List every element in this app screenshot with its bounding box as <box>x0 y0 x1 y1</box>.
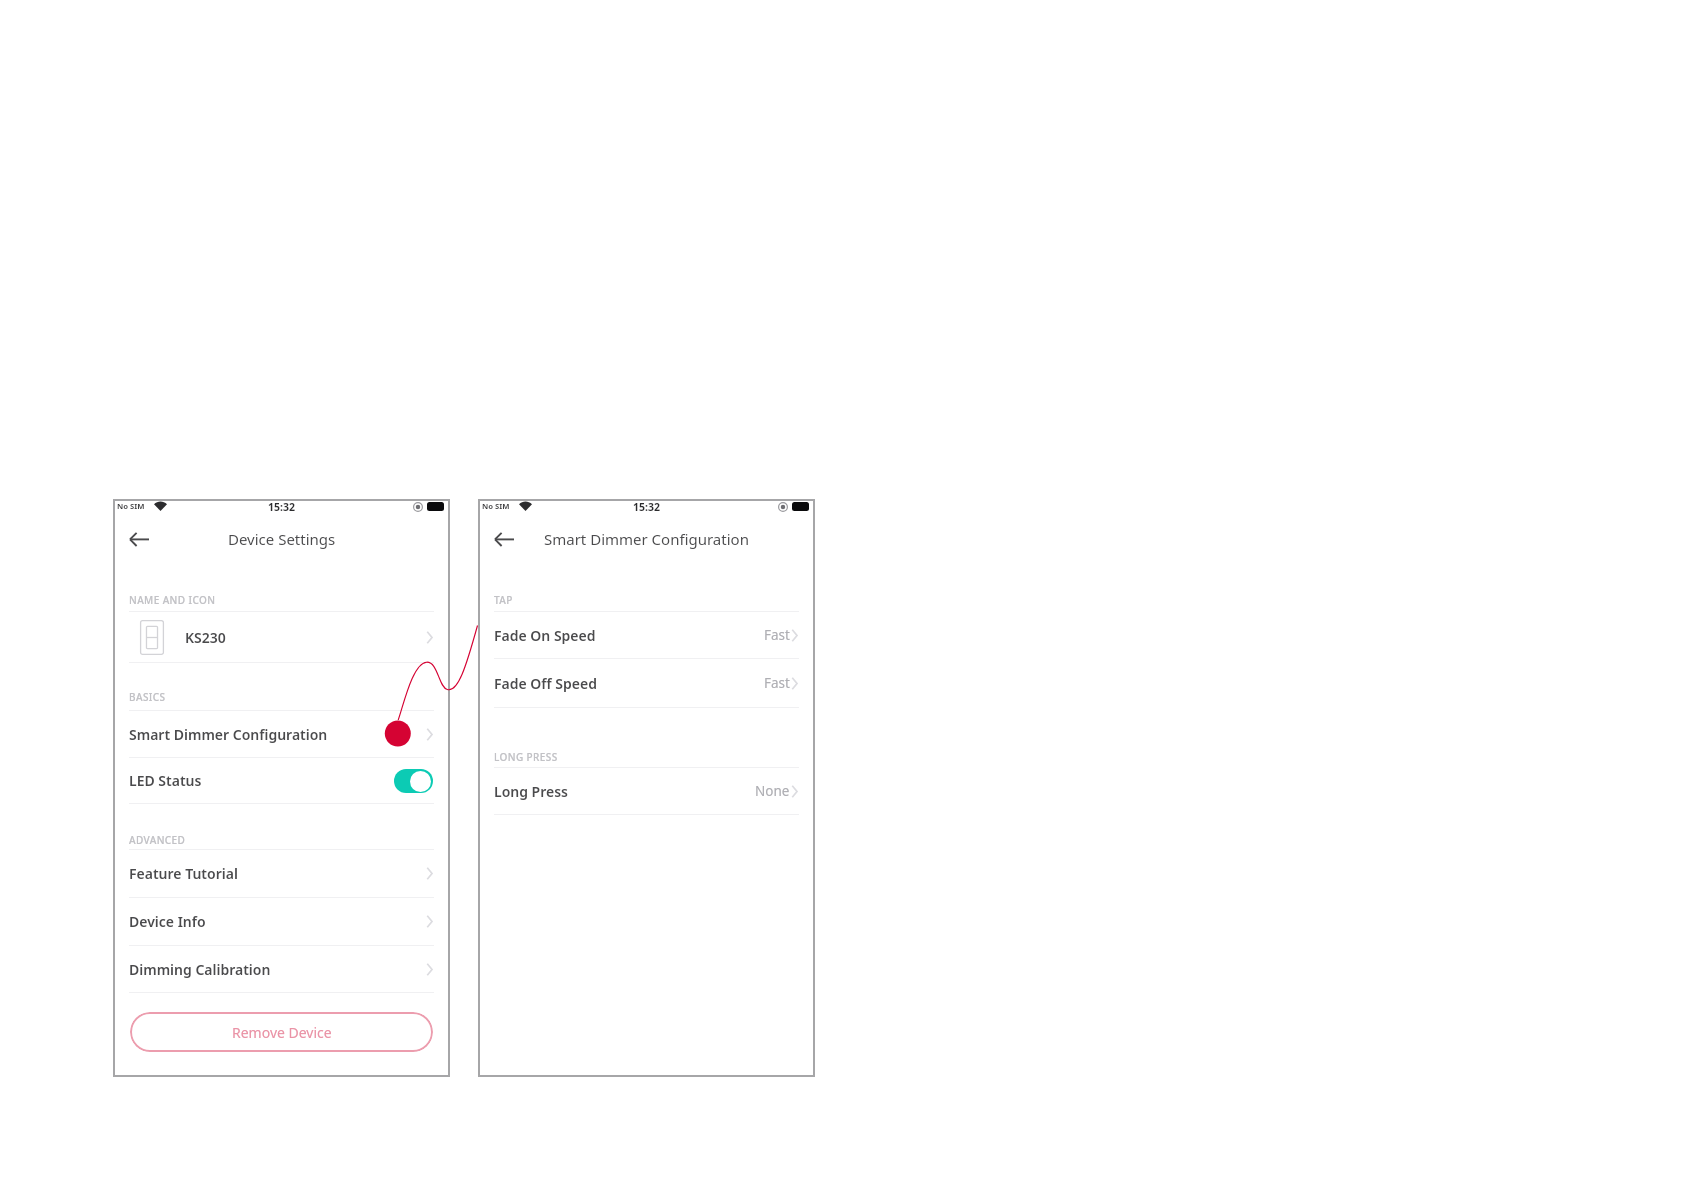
button[interactable]: Dimming Calibration <box>113 946 450 992</box>
staticText: Fast <box>764 674 790 692</box>
button[interactable]: Long Press <box>478 768 815 814</box>
button[interactable]: Back <box>487 527 515 555</box>
staticText: Fade Off Speed <box>494 674 597 693</box>
staticText: 15:32 <box>268 500 295 514</box>
staticText: NAME AND ICON <box>129 593 216 607</box>
staticText: Fast <box>764 626 790 644</box>
staticText: None <box>755 782 790 800</box>
button[interactable]: Feature Tutorial <box>113 850 450 897</box>
staticText: Smart Dimmer Configuration <box>129 725 328 744</box>
staticText: No SIM <box>117 501 145 511</box>
staticText: Fade On Speed <box>494 626 596 645</box>
button[interactable]: LED Status on <box>394 769 433 793</box>
staticText: TAP <box>494 593 513 607</box>
staticText: 15:32 <box>633 500 660 514</box>
button[interactable]: Smart Dimmer Configuration <box>113 711 450 757</box>
button[interactable]: Fade On Speed <box>478 612 815 658</box>
staticText: Dimming Calibration <box>129 960 271 979</box>
staticText: ADVANCED <box>129 833 186 847</box>
staticText: LED Status <box>129 771 202 790</box>
button[interactable]: Fade Off Speed <box>478 659 815 707</box>
staticText: Device Settings <box>228 529 336 549</box>
staticText: Device Info <box>129 912 206 931</box>
staticText: LONG PRESS <box>494 750 558 764</box>
button[interactable]: Device Info <box>113 898 450 945</box>
staticText: KS230 <box>185 628 226 647</box>
button[interactable]: KS230 <box>113 612 450 662</box>
staticText: Feature Tutorial <box>129 864 238 883</box>
staticText: Smart Dimmer Configuration <box>544 529 749 549</box>
button[interactable]: Back <box>122 527 150 555</box>
staticText: BASICS <box>129 690 166 704</box>
button[interactable]: LED Status <box>113 758 450 803</box>
staticText: No SIM <box>482 501 510 511</box>
staticText: Long Press <box>494 782 569 801</box>
staticText: Remove Device <box>232 1023 332 1042</box>
button[interactable]: Remove Device <box>130 1012 433 1052</box>
